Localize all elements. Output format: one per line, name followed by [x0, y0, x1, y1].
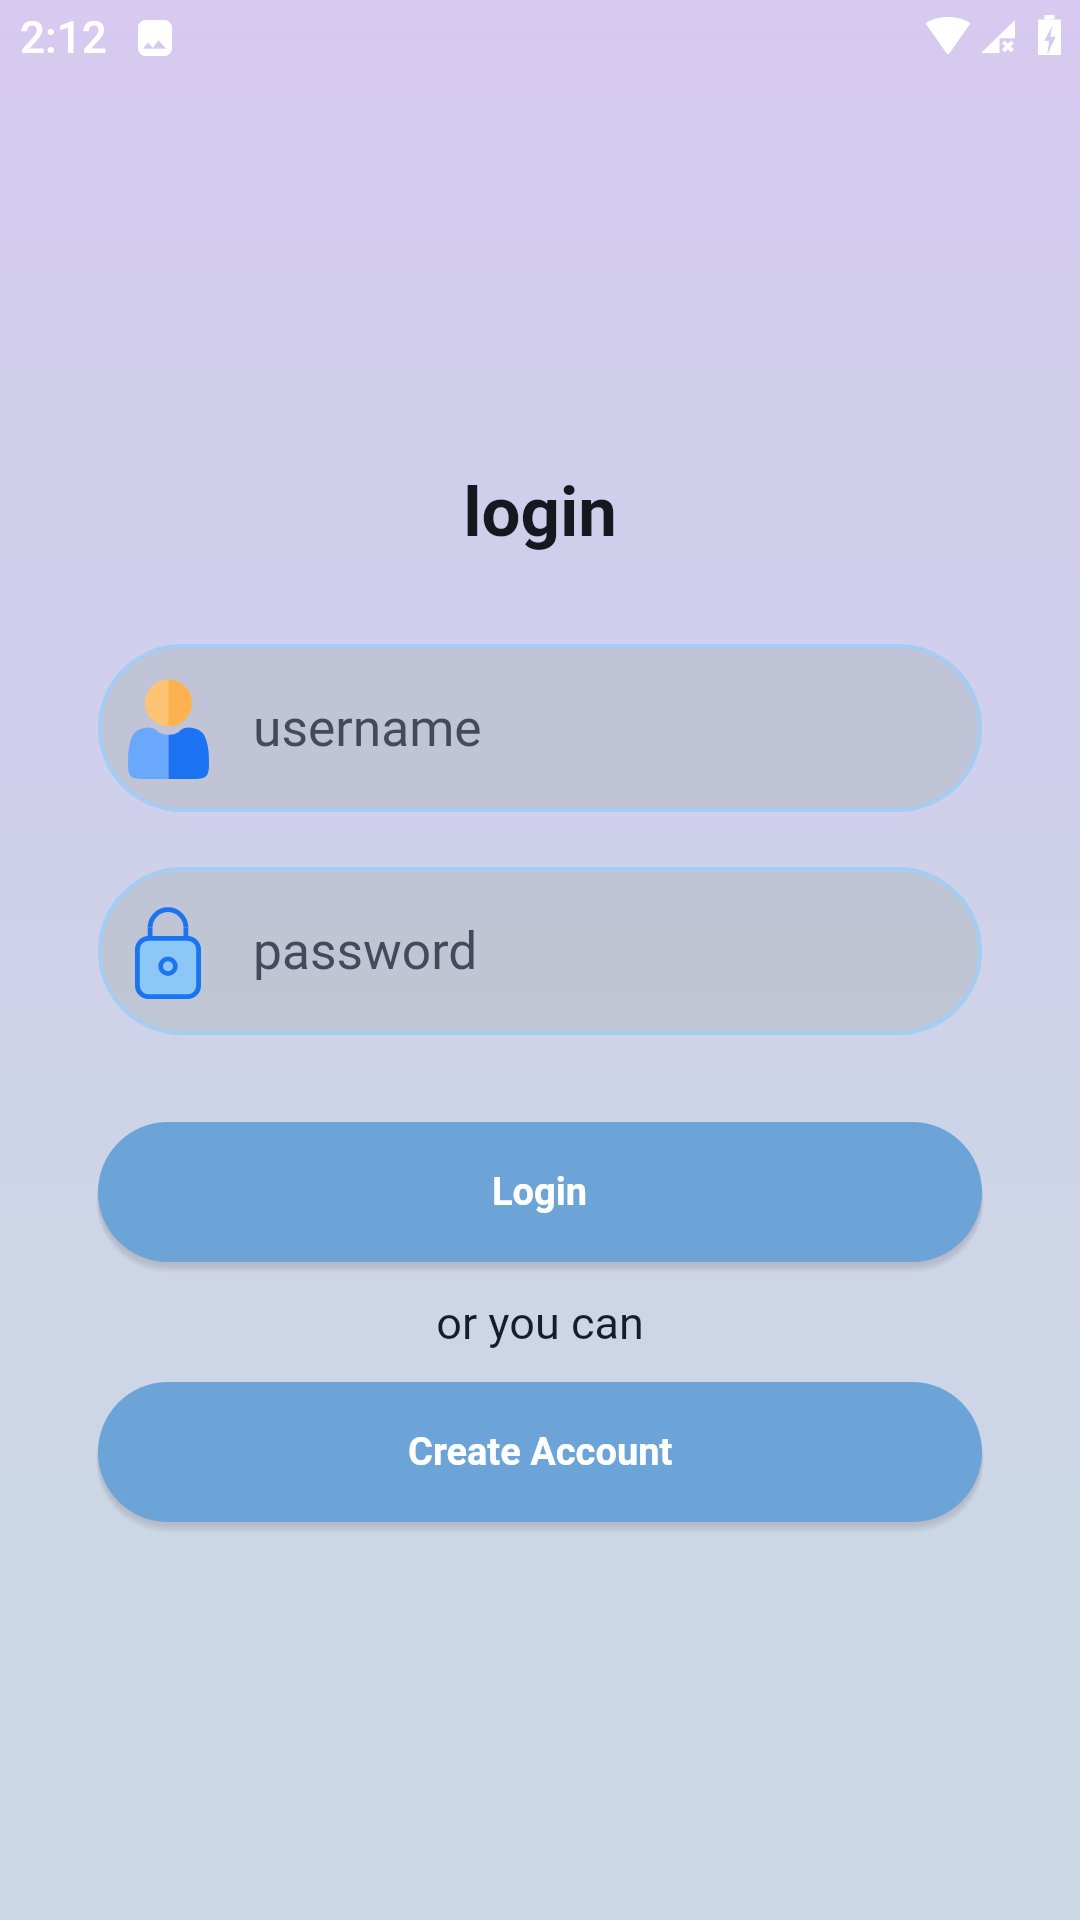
staticText: Create Account	[408, 1430, 673, 1475]
other: Screenshot	[138, 20, 172, 56]
staticText: login	[0, 472, 1080, 553]
button[interactable]: Create Account	[98, 1382, 982, 1522]
other: Battery charging	[1038, 15, 1061, 55]
button[interactable]: username	[98, 644, 982, 812]
staticText: or you can	[0, 1297, 1080, 1350]
other: Wi-Fi	[925, 17, 971, 54]
button[interactable]: password	[98, 867, 982, 1035]
staticText: username	[253, 698, 482, 758]
button[interactable]: Login	[98, 1122, 982, 1262]
staticText: Login	[492, 1170, 588, 1215]
other: No SIM	[981, 20, 1015, 53]
staticText: 2:12	[20, 12, 107, 64]
staticText: password	[253, 921, 478, 981]
